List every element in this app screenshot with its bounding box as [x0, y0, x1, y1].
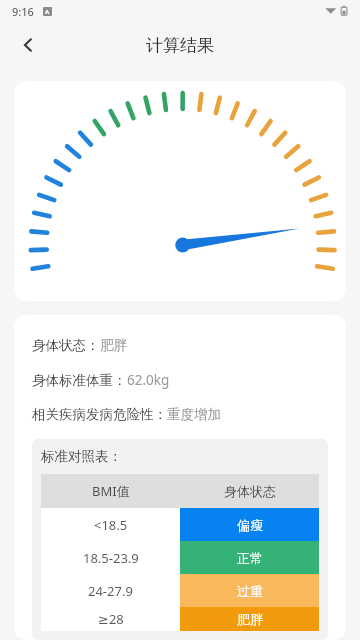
staticText: ≥28: [98, 610, 124, 628]
staticText: 过重: [237, 583, 263, 599]
staticText: 计算结果: [146, 35, 214, 56]
staticText: 偏瘦: [237, 517, 263, 533]
staticText: 24-27.9: [88, 582, 133, 600]
staticText: 肥胖: [237, 611, 263, 627]
staticText: BMI值: [92, 482, 130, 500]
staticText: 正常: [237, 550, 263, 566]
staticText: 62.0kg: [127, 371, 170, 389]
staticText: 相关疾病发病危险性：: [32, 406, 167, 423]
staticText: 9:16: [12, 4, 34, 19]
staticText: 重度增加: [167, 406, 221, 423]
staticText: 肥胖: [100, 337, 127, 354]
staticText: 身体标准体重：: [32, 372, 127, 389]
staticText: A: [45, 8, 50, 16]
staticText: <18.5: [94, 516, 128, 534]
staticText: 身体状态：: [32, 337, 100, 354]
staticText: 身体状态: [224, 483, 276, 499]
staticText: 18.5-23.9: [83, 549, 139, 567]
staticText: 标准对照表：: [41, 448, 122, 465]
button[interactable]: Back: [6, 23, 50, 67]
